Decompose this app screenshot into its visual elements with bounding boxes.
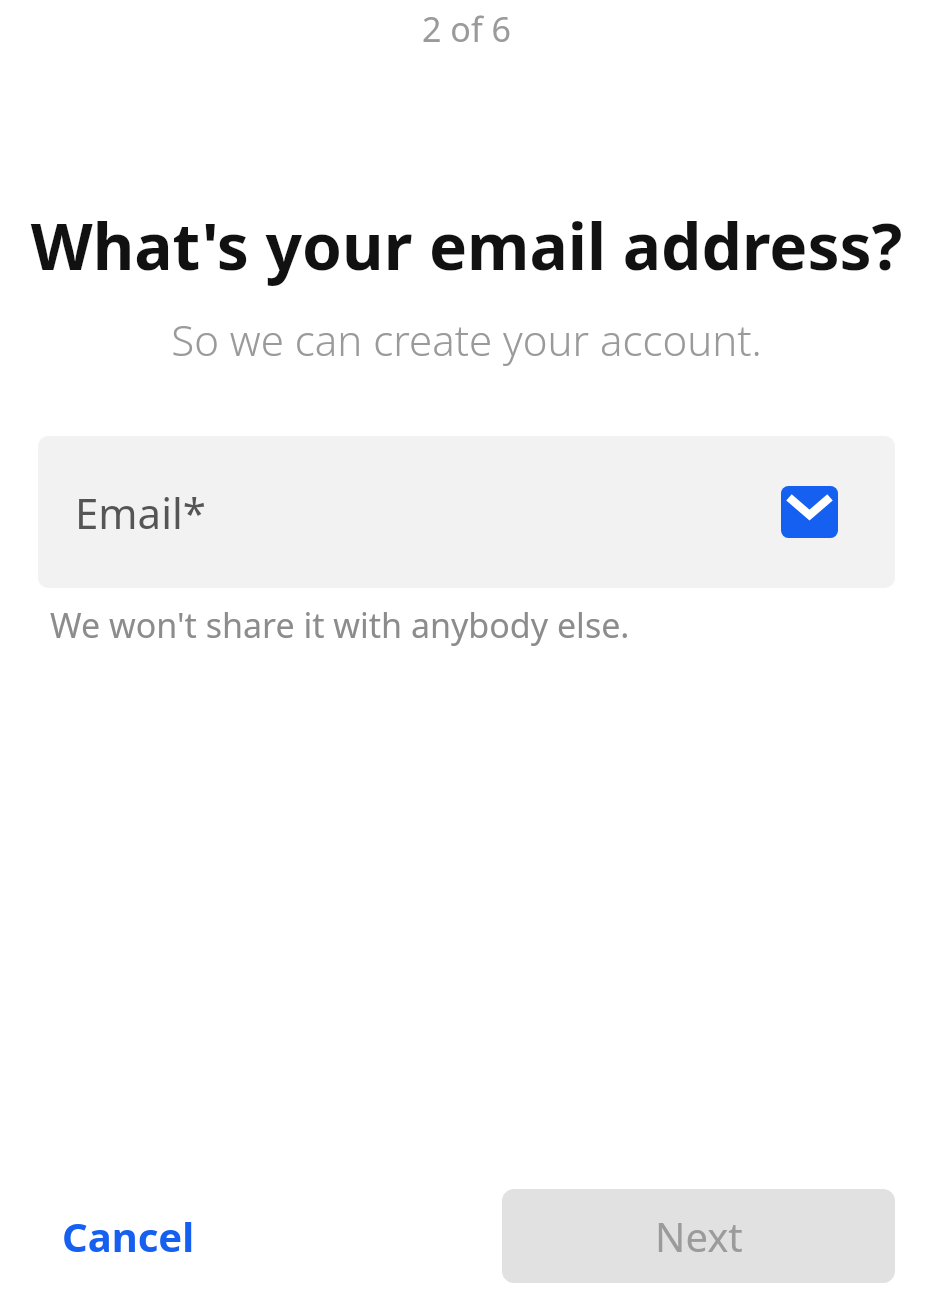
staticText: 2 of 6	[0, 6, 933, 52]
staticText: Email*	[75, 484, 206, 541]
button[interactable]: Next	[502, 1189, 895, 1283]
other: Email	[781, 486, 838, 538]
button[interactable]: Cancel	[50, 1199, 207, 1273]
staticText: So we can create your account.	[0, 311, 933, 368]
staticText: What's your email address?	[0, 202, 933, 289]
button[interactable]: Email*	[38, 436, 895, 588]
staticText: We won't share it with anybody else.	[50, 602, 630, 648]
staticText: Cancel	[62, 1209, 195, 1263]
staticText: Next	[655, 1209, 743, 1263]
